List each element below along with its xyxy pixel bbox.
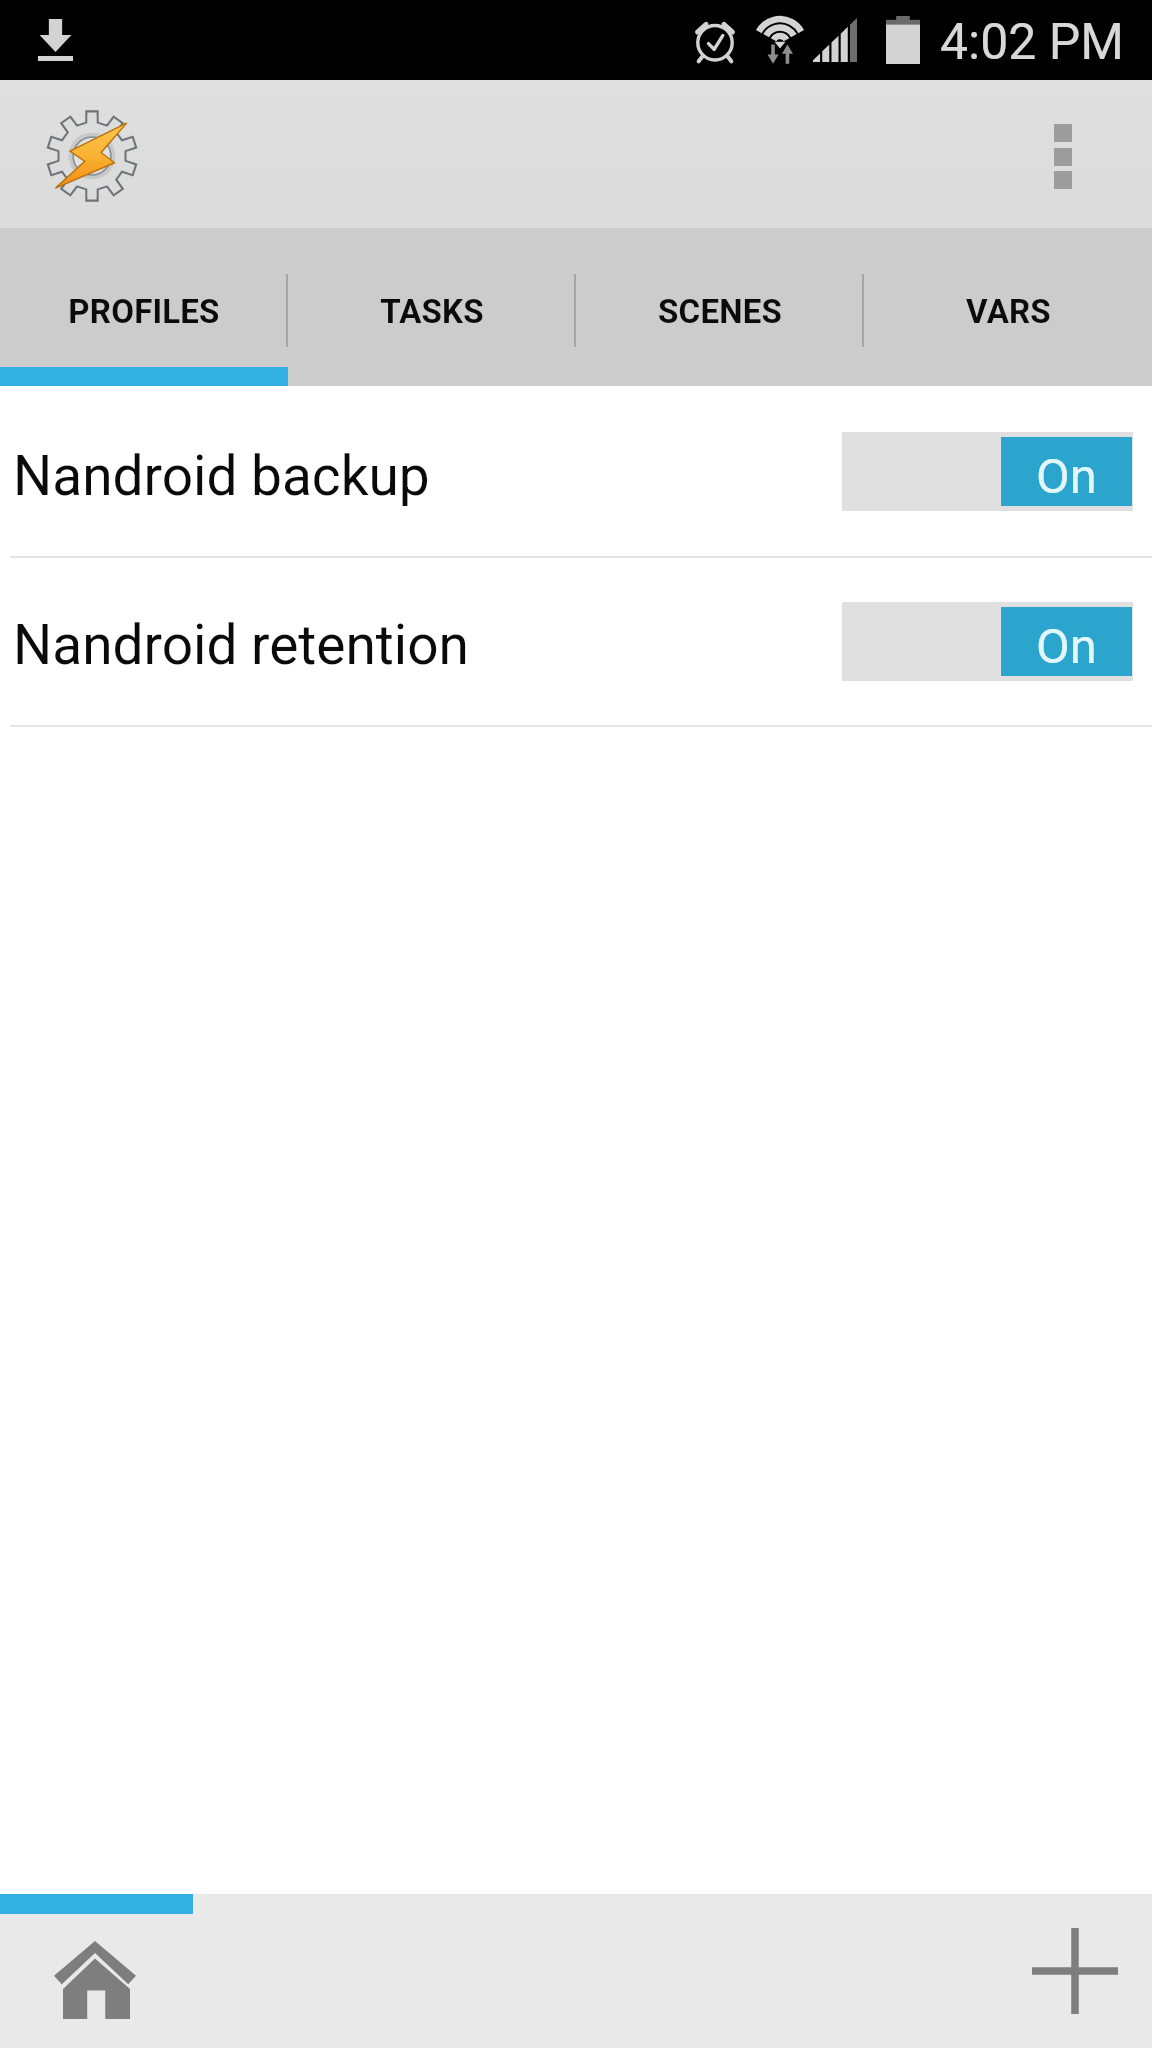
staticText: 4:02 PM	[940, 13, 1125, 72]
button[interactable]: Home	[0, 1914, 190, 2048]
staticText: Nandroid backup	[13, 444, 430, 508]
button[interactable]: Nandroid backup on	[842, 432, 1133, 511]
staticText: PROFILES	[68, 292, 220, 331]
button[interactable]: PROFILES	[0, 228, 288, 386]
staticText: VARS	[966, 292, 1051, 331]
staticText: TASKS	[380, 292, 484, 331]
button[interactable]: VARS	[864, 228, 1152, 386]
button[interactable]: Nandroid backup	[0, 386, 1152, 556]
staticText: Nandroid retention	[13, 613, 469, 677]
button[interactable]: More options	[1000, 80, 1152, 228]
staticText: On	[1036, 618, 1097, 675]
staticText: SCENES	[658, 292, 782, 331]
button[interactable]: SCENES	[576, 228, 864, 386]
button[interactable]: Add	[992, 1914, 1152, 2048]
button[interactable]: Nandroid retention	[0, 558, 1152, 725]
button[interactable]: TASKS	[288, 228, 576, 386]
staticText: On	[1036, 448, 1097, 505]
button[interactable]: Tasker	[46, 110, 138, 202]
button[interactable]: Nandroid retention on	[842, 602, 1133, 681]
